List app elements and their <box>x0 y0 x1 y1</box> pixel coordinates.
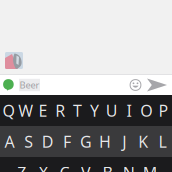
button[interactable]: T <box>69 95 86 126</box>
button[interactable]: V <box>75 157 97 172</box>
button[interactable]: Y <box>86 95 103 126</box>
button[interactable]: F <box>57 126 76 157</box>
staticText: J <box>122 131 126 152</box>
staticText: N <box>123 162 135 172</box>
button[interactable]: J <box>115 126 134 157</box>
staticText: B <box>102 162 112 172</box>
staticText: Beer <box>19 79 39 91</box>
button[interactable]: H <box>96 126 115 157</box>
staticText: K <box>138 131 148 152</box>
staticText: U <box>106 100 118 121</box>
button[interactable]: A <box>0 126 19 157</box>
staticText: D <box>42 131 54 152</box>
staticText: X <box>39 162 48 172</box>
button[interactable]: W <box>17 95 34 126</box>
button[interactable]: Beer <box>0 75 63 95</box>
button[interactable]: M <box>140 157 161 172</box>
button[interactable]: C <box>54 157 75 172</box>
staticText: Q <box>3 100 15 121</box>
button[interactable]: Emoji <box>126 75 145 95</box>
button[interactable]: Q <box>0 95 17 126</box>
staticText: L <box>158 131 166 152</box>
staticText: H <box>99 131 111 152</box>
button[interactable]: K <box>134 126 153 157</box>
staticText: I <box>126 100 131 121</box>
staticText: T <box>73 100 82 121</box>
button[interactable]: Z <box>11 157 32 172</box>
staticText: G <box>80 131 92 152</box>
button[interactable]: L <box>153 126 172 157</box>
staticText: W <box>18 100 33 121</box>
staticText: F <box>63 131 71 152</box>
staticText: C <box>60 162 70 172</box>
button[interactable]: B <box>97 157 118 172</box>
button[interactable]: R <box>52 95 69 126</box>
staticText: P <box>158 100 168 121</box>
button[interactable]: I <box>120 95 138 126</box>
staticText: Y <box>90 100 99 121</box>
staticText: S <box>24 131 33 152</box>
button[interactable]: E <box>34 95 52 126</box>
button[interactable]: S <box>19 126 38 157</box>
button[interactable]: P <box>155 95 172 126</box>
button[interactable]: O <box>138 95 155 126</box>
staticText: Z <box>17 162 26 172</box>
staticText: E <box>38 100 47 121</box>
staticText: O <box>140 100 152 121</box>
button[interactable]: G <box>76 126 95 157</box>
button[interactable]: X <box>32 157 54 172</box>
staticText: R <box>55 100 65 121</box>
button[interactable]: N <box>118 157 139 172</box>
button[interactable]: U <box>103 95 120 126</box>
staticText: M <box>143 162 158 172</box>
staticText: V <box>81 162 91 172</box>
staticText: A <box>5 131 15 152</box>
button[interactable]: Send <box>145 75 169 95</box>
button[interactable]: D <box>38 126 57 157</box>
